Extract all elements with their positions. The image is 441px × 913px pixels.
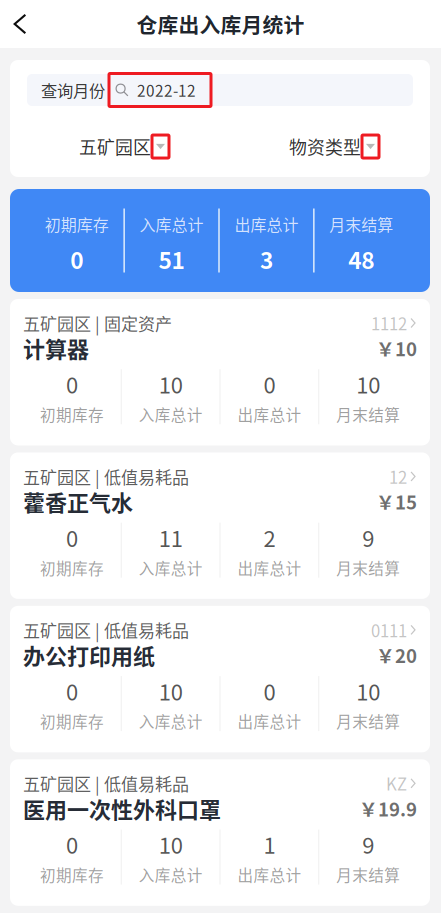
staticText: 出库总计 <box>237 863 301 886</box>
staticText: KZ <box>386 771 407 795</box>
staticText: 0 <box>66 521 78 553</box>
staticText: 月末结算 <box>336 863 400 886</box>
staticText: 仓库出入库月统计 <box>136 9 304 39</box>
staticText: 10 <box>356 675 380 707</box>
staticText: 五矿园区 | 低值易耗品 <box>23 464 189 489</box>
staticText: 月末结算 <box>336 710 400 732</box>
staticText: ￥10 <box>376 334 417 361</box>
button[interactable]: 查询月份 <box>27 74 413 106</box>
staticText: 10 <box>356 368 380 400</box>
staticText: 0 <box>66 828 78 860</box>
staticText: 五矿园区 | 低值易耗品 <box>23 771 189 796</box>
button[interactable]: 五矿园区 | 低值易耗品 <box>10 606 430 752</box>
staticText: 五矿园区 | 固定资产 <box>23 311 172 335</box>
staticText: 入库总计 <box>139 556 203 579</box>
staticText: 10 <box>159 675 183 707</box>
staticText: 藿香正气水 <box>23 485 133 517</box>
staticText: 10 <box>159 368 183 400</box>
staticText: 初期库存 <box>40 710 104 732</box>
staticText: 月末结算 <box>336 403 400 425</box>
staticText: 查询月份 <box>41 78 105 102</box>
staticText: 入库总计 <box>139 710 203 732</box>
staticText: 初期库存 <box>45 212 109 236</box>
staticText: 医用一次性外科口罩 <box>23 792 221 824</box>
staticText: 办公打印用纸 <box>23 639 155 671</box>
staticText: 初期库存 <box>40 403 104 425</box>
staticText: 月末结算 <box>336 556 400 579</box>
button[interactable]: 物资类型 <box>220 135 430 158</box>
staticText: 0 <box>66 368 78 400</box>
button[interactable]: 五矿园区 | 低值易耗品 <box>10 452 430 599</box>
button[interactable]: 五矿园区 | 低值易耗品 <box>10 759 430 906</box>
staticText: ￥19.9 <box>359 795 417 822</box>
staticText: 0 <box>66 675 78 707</box>
staticText: 五矿园区 <box>79 134 151 159</box>
staticText: 0 <box>263 368 275 400</box>
staticText: 物资类型 <box>289 134 361 159</box>
staticText: 出库总计 <box>234 212 298 236</box>
staticText: 10 <box>159 828 183 860</box>
staticText: 9 <box>362 828 374 860</box>
button[interactable]: 五矿园区 <box>10 135 220 158</box>
staticText: 月末结算 <box>329 212 393 236</box>
staticText: 入库总计 <box>140 212 204 236</box>
staticText: 51 <box>159 243 185 275</box>
staticText: 入库总计 <box>139 863 203 886</box>
staticText: 48 <box>348 243 374 275</box>
staticText: 1 <box>263 828 275 860</box>
staticText: 初期库存 <box>40 556 104 579</box>
staticText: 0 <box>263 675 275 707</box>
staticText: 2 <box>263 521 275 553</box>
button[interactable]: Back <box>0 1 40 47</box>
staticText: 出库总计 <box>237 710 301 732</box>
staticText: 计算器 <box>23 332 89 364</box>
staticText: 五矿园区 | 低值易耗品 <box>23 617 189 642</box>
staticText: 0111 <box>371 618 407 642</box>
staticText: 出库总计 <box>237 556 301 579</box>
staticText: 12 <box>389 464 407 488</box>
staticText: 出库总计 <box>237 403 301 425</box>
staticText: 9 <box>362 521 374 553</box>
staticText: 初期库存 <box>40 863 104 886</box>
staticText: 1112 <box>371 311 407 335</box>
staticText: ￥20 <box>376 641 417 668</box>
staticText: 0 <box>70 243 83 275</box>
staticText: 入库总计 <box>139 403 203 425</box>
staticText: 3 <box>260 243 273 275</box>
staticText: ￥15 <box>376 488 417 515</box>
button[interactable]: 五矿园区 | 固定资产 <box>10 299 430 445</box>
staticText: 11 <box>159 521 183 553</box>
staticText: 2022-12 <box>137 79 196 101</box>
